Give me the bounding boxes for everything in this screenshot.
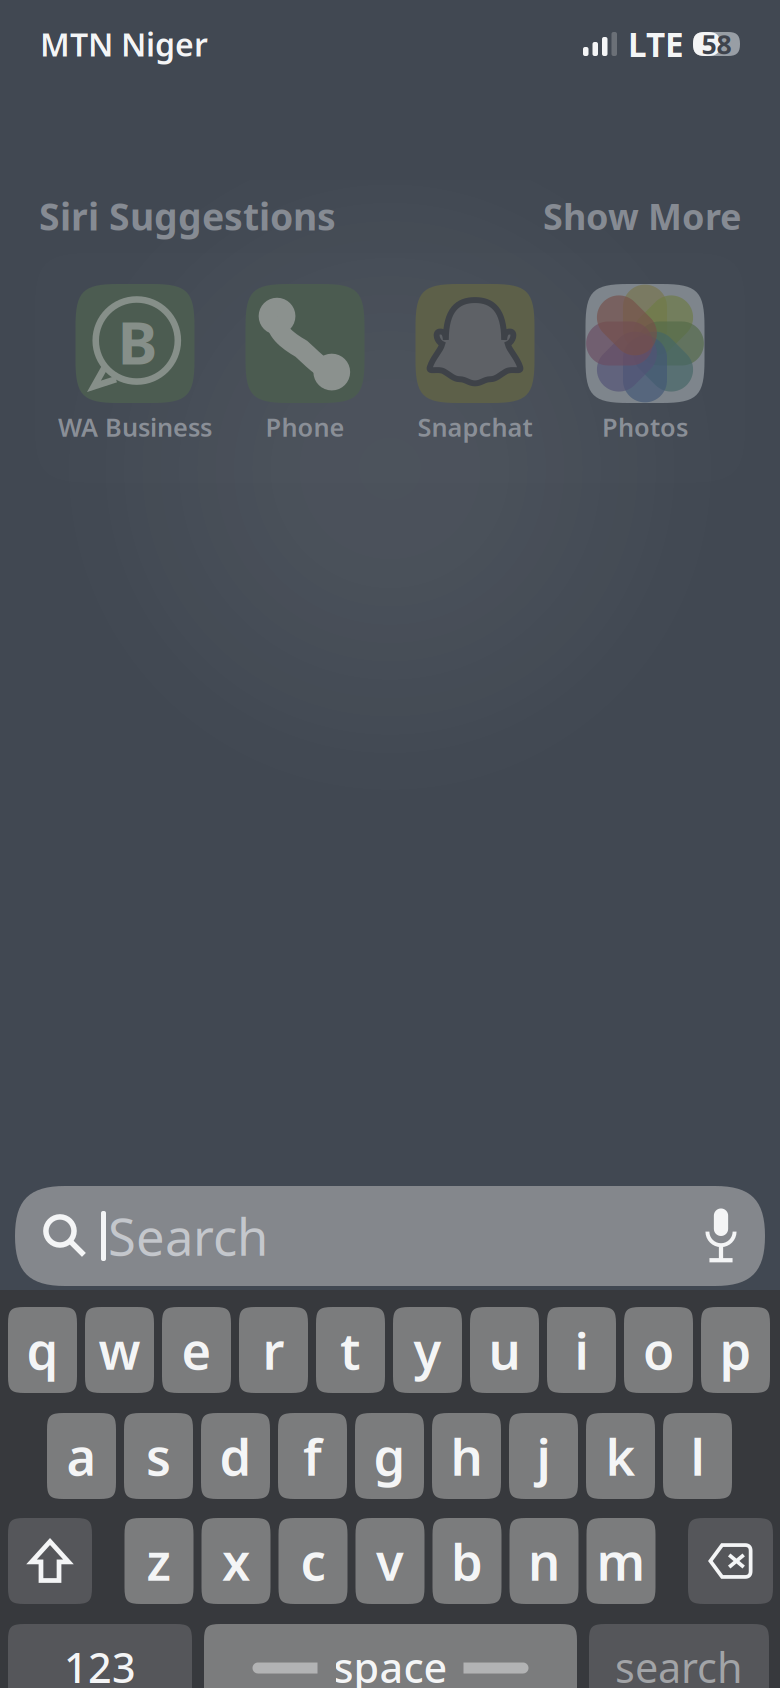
staticText: search [615, 1640, 743, 1688]
staticText: i [574, 1316, 588, 1384]
button[interactable]: g [355, 1413, 424, 1499]
staticText: LTE [628, 22, 684, 66]
button[interactable]: l [663, 1413, 732, 1499]
staticText: Siri Suggestions [39, 191, 336, 241]
staticText: c [300, 1527, 325, 1595]
staticText: x [222, 1527, 250, 1595]
staticText: m [596, 1527, 645, 1595]
button[interactable]: u [470, 1307, 539, 1393]
staticText: MTN Niger [40, 23, 208, 65]
button[interactable]: s [124, 1413, 193, 1499]
staticText: Phone [265, 410, 344, 444]
button[interactable]: t [316, 1307, 385, 1393]
button[interactable]: w [85, 1307, 154, 1393]
staticText: 123 [64, 1640, 136, 1688]
staticText: p [719, 1316, 751, 1384]
staticText: s [146, 1422, 171, 1490]
staticText: q [26, 1316, 58, 1384]
staticText: b [451, 1527, 483, 1595]
button[interactable]: Shift [8, 1518, 92, 1604]
staticText: n [528, 1527, 560, 1595]
staticText: t [340, 1316, 361, 1384]
button[interactable]: Phone [220, 284, 390, 444]
staticText: u [488, 1316, 520, 1384]
staticText: z [146, 1527, 171, 1595]
button[interactable]: p [701, 1307, 770, 1393]
staticText: h [450, 1422, 482, 1490]
button[interactable]: o [624, 1307, 693, 1393]
button[interactable]: 123 [8, 1624, 192, 1688]
button[interactable]: search [589, 1624, 769, 1688]
staticText: y [413, 1316, 441, 1384]
button[interactable]: Photos [560, 284, 730, 444]
button[interactable]: Delete [688, 1518, 773, 1604]
staticText: a [66, 1422, 96, 1490]
staticText: Photos [602, 410, 688, 444]
staticText: WA Business [58, 410, 212, 444]
button[interactable]: b [432, 1518, 501, 1604]
button[interactable]: f [278, 1413, 347, 1499]
staticText: j [536, 1422, 550, 1490]
button[interactable]: a [47, 1413, 116, 1499]
staticText: l [690, 1422, 704, 1490]
staticText: B [117, 301, 157, 381]
button[interactable]: j [509, 1413, 578, 1499]
staticText: r [262, 1316, 284, 1384]
staticText: Search [108, 1202, 268, 1270]
staticText: 58 [701, 26, 731, 62]
button[interactable]: r [239, 1307, 308, 1393]
staticText: Snapchat [417, 410, 532, 444]
staticText: g [373, 1422, 405, 1490]
staticText: e [181, 1316, 211, 1384]
staticText: o [643, 1316, 674, 1384]
button[interactable]: Snapchat [390, 284, 560, 444]
staticText: space [333, 1640, 447, 1688]
button[interactable]: space [204, 1624, 577, 1688]
button[interactable]: i [547, 1307, 616, 1393]
staticText: Show More [543, 192, 741, 240]
button[interactable]: z [124, 1518, 193, 1604]
button[interactable]: n [509, 1518, 578, 1604]
button[interactable]: v [355, 1518, 424, 1604]
button[interactable]: x [201, 1518, 270, 1604]
staticText: v [376, 1527, 404, 1595]
staticText: k [605, 1422, 635, 1490]
button[interactable]: h [432, 1413, 501, 1499]
button[interactable]: y [393, 1307, 462, 1393]
button[interactable]: B [50, 284, 220, 444]
button[interactable]: m [586, 1518, 655, 1604]
staticText: w [98, 1316, 140, 1384]
button[interactable]: e [162, 1307, 231, 1393]
staticText: d [219, 1422, 251, 1490]
button[interactable]: d [201, 1413, 270, 1499]
button[interactable]: Show More [543, 192, 741, 240]
button[interactable]: c [278, 1518, 347, 1604]
button[interactable]: q [8, 1307, 77, 1393]
button[interactable]: k [586, 1413, 655, 1499]
staticText: f [303, 1422, 322, 1490]
